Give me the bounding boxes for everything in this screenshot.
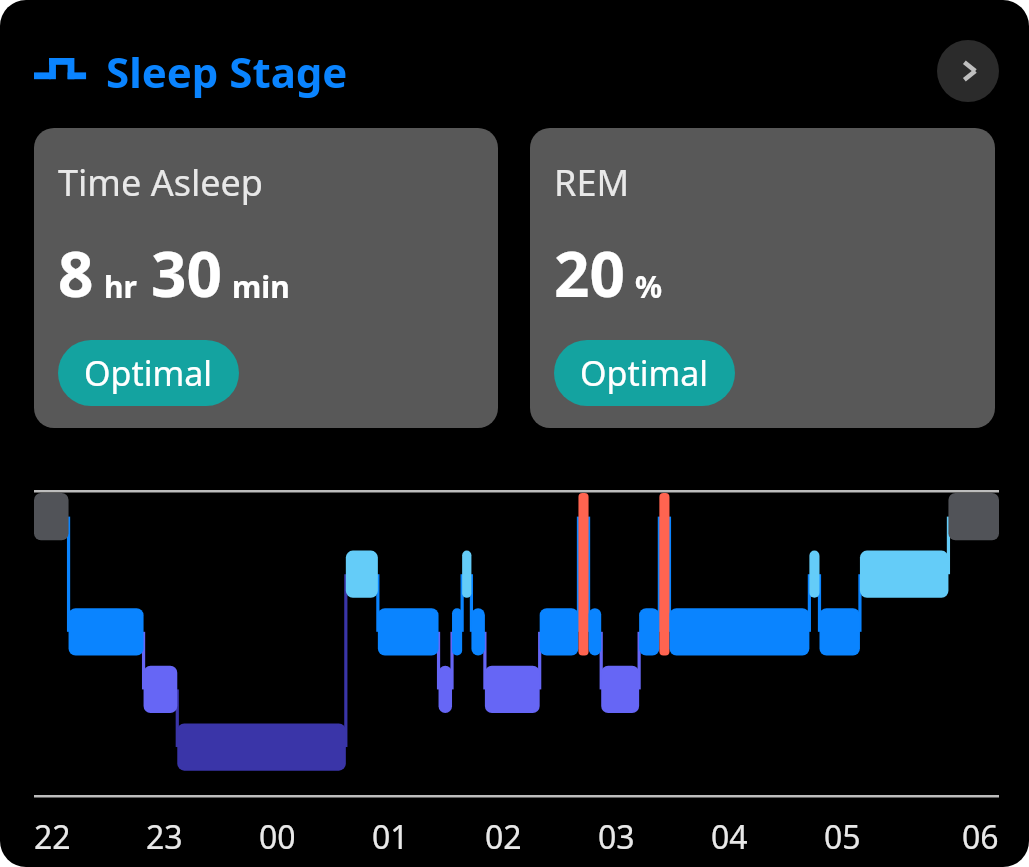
- staticText: 05: [824, 815, 861, 859]
- staticText: Time Asleep: [58, 158, 263, 207]
- staticText: Sleep Stage: [106, 43, 348, 100]
- button[interactable]: Open sleep stage details: [937, 40, 999, 102]
- staticText: Optimal: [84, 350, 213, 396]
- staticText: 22: [34, 815, 71, 859]
- staticText: REM: [554, 158, 630, 207]
- staticText: 04: [711, 815, 748, 859]
- button[interactable]: Optimal: [554, 340, 735, 406]
- button[interactable]: Optimal: [58, 340, 239, 406]
- staticText: 01: [372, 815, 409, 859]
- staticText: min: [232, 266, 290, 307]
- button[interactable]: REM: [530, 128, 995, 428]
- staticText: 03: [598, 815, 635, 859]
- staticText: 23: [146, 815, 183, 859]
- staticText: 02: [485, 815, 522, 859]
- staticText: 20: [554, 231, 625, 315]
- staticText: hr: [104, 266, 137, 307]
- staticText: %: [635, 266, 663, 307]
- staticText: 30: [151, 231, 222, 315]
- staticText: 06: [962, 815, 999, 859]
- button[interactable]: Time Asleep: [34, 128, 498, 428]
- staticText: 8: [58, 231, 94, 315]
- staticText: 00: [259, 815, 296, 859]
- staticText: Optimal: [580, 350, 709, 396]
